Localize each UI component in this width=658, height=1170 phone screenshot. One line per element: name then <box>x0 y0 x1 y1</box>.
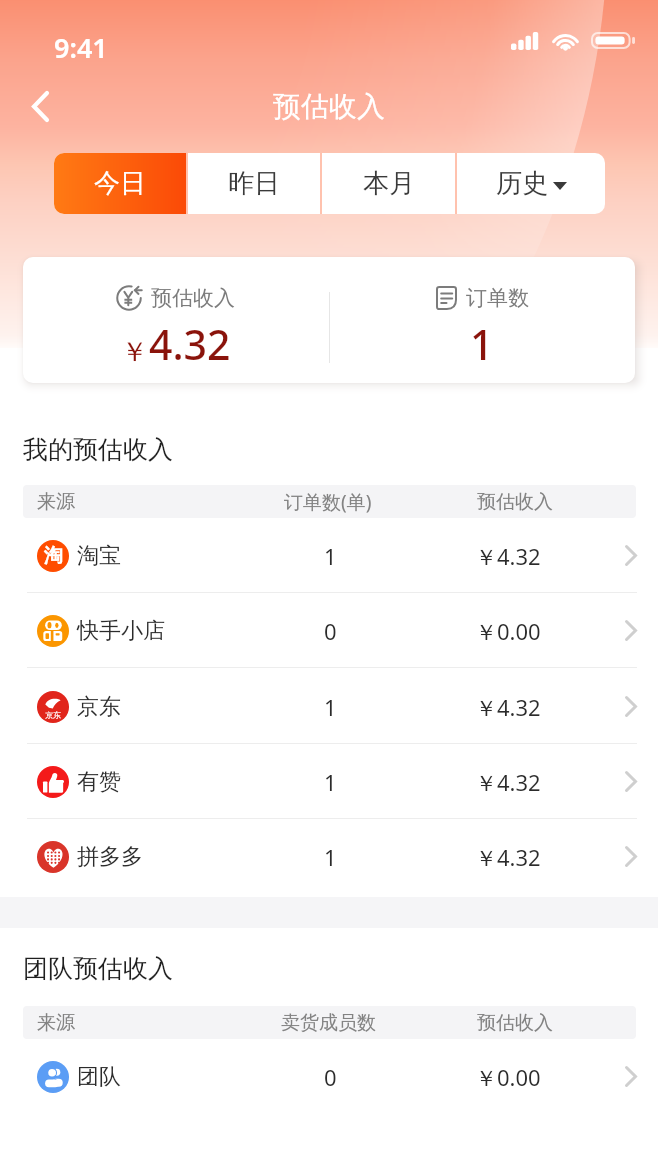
staticText: 订单数 <box>466 285 529 311</box>
staticText: 我的预估收入 <box>23 434 173 465</box>
button[interactable]: 返回 <box>13 79 67 133</box>
staticText: 拼多多 <box>77 843 143 871</box>
staticText: 团队预估收入 <box>23 953 173 984</box>
staticText: 淘 <box>44 544 63 568</box>
staticText: 团队 <box>77 1063 121 1091</box>
staticText: ￥0.00 <box>475 616 541 646</box>
staticText: 预估收入 <box>151 285 235 311</box>
staticText: 1 <box>324 767 337 797</box>
staticText: 1 <box>324 692 337 722</box>
button[interactable]: 本月 <box>322 153 455 214</box>
staticText: 0 <box>324 616 337 646</box>
staticText: 1 <box>470 316 494 372</box>
staticText: 本月 <box>363 167 415 200</box>
staticText: 卖货成员数 <box>281 1011 376 1035</box>
staticText: 订单数(单) <box>284 489 372 515</box>
staticText: 京东 <box>77 693 121 721</box>
staticText: 0 <box>324 1062 337 1092</box>
staticText: ￥4.32 <box>475 692 541 722</box>
button[interactable]: 有赞 <box>0 744 658 819</box>
staticText: 淘宝 <box>77 542 121 570</box>
staticText: 预估收入 <box>477 490 553 514</box>
staticText: ￥4.32 <box>475 767 541 797</box>
button[interactable]: 今日 <box>54 153 186 214</box>
staticText: 今日 <box>94 167 146 200</box>
staticText: ￥ <box>121 335 148 369</box>
staticText: 预估收入 <box>477 1011 553 1035</box>
staticText: 预估收入 <box>273 89 385 124</box>
button[interactable]: 历史 <box>457 153 605 214</box>
staticText: 快手小店 <box>77 617 165 645</box>
button[interactable]: 快手小店 <box>0 593 658 668</box>
staticText: 昨日 <box>228 167 280 200</box>
staticText: 9:41 <box>54 29 108 66</box>
staticText: 京东 <box>45 710 61 720</box>
button[interactable]: 淘 <box>0 518 658 593</box>
button[interactable]: 团队 <box>0 1039 658 1114</box>
staticText: ￥4.32 <box>475 842 541 872</box>
staticText: 1 <box>324 541 337 571</box>
button[interactable]: 拼多多 <box>0 819 658 894</box>
staticText: ￥4.32 <box>475 541 541 571</box>
staticText: 来源 <box>37 1011 75 1035</box>
staticText: ￥0.00 <box>475 1062 541 1092</box>
staticText: 4.32 <box>149 316 231 372</box>
button[interactable]: 京东 <box>0 669 658 744</box>
staticText: 来源 <box>37 490 75 514</box>
button[interactable]: 昨日 <box>188 153 320 214</box>
staticText: 历史 <box>496 167 548 200</box>
staticText: 有赞 <box>77 768 121 796</box>
staticText: 1 <box>324 842 337 872</box>
